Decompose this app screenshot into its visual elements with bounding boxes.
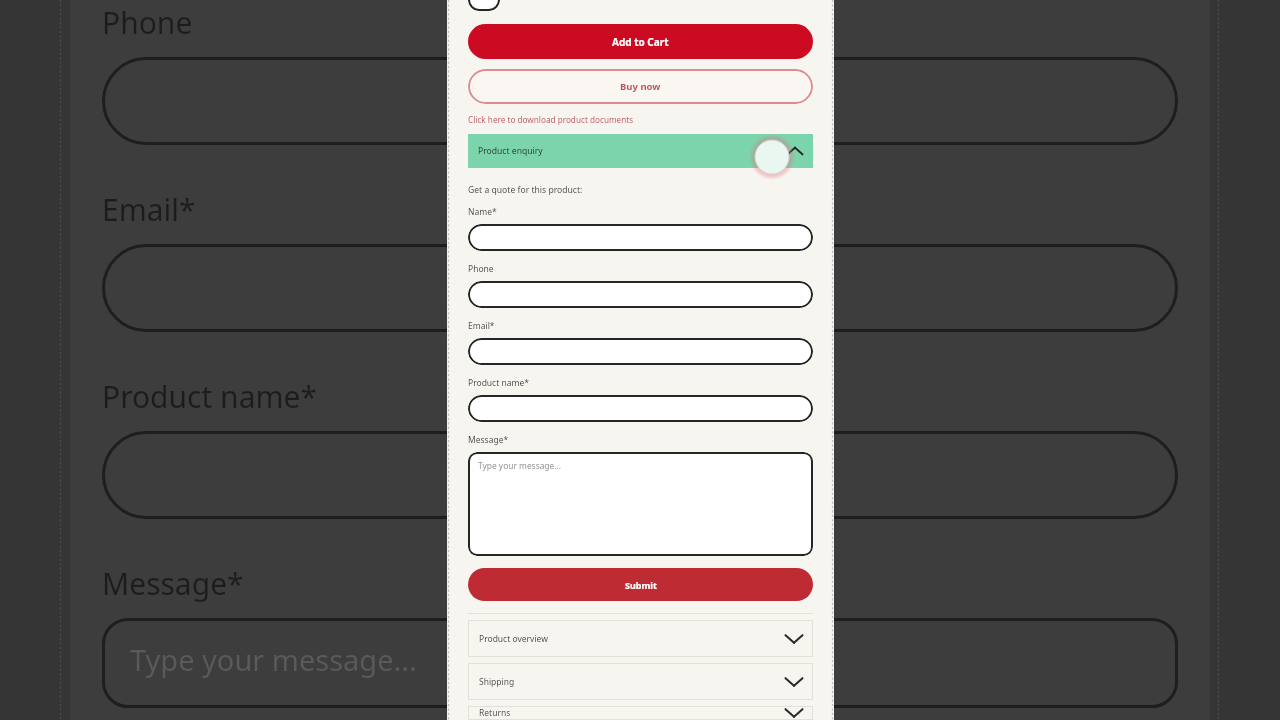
- staticText: Message*: [102, 563, 244, 604]
- button[interactable]: Buy now: [468, 69, 813, 104]
- button[interactable]: Product enquiry: [468, 134, 813, 168]
- button[interactable]: Add to Cart: [468, 24, 813, 59]
- staticText: Phone: [468, 263, 494, 275]
- staticText: Submit: [625, 579, 657, 591]
- staticText: Shipping: [479, 676, 515, 688]
- staticText: Type your message...: [130, 640, 417, 679]
- other: Collapse Product enquiry: [787, 143, 803, 159]
- button[interactable]: Shipping: [468, 663, 813, 700]
- button[interactable]: Returns: [468, 706, 813, 720]
- button[interactable]: [468, 281, 813, 308]
- button[interactable]: Product overview: [468, 620, 813, 657]
- staticText: Product enquiry: [478, 145, 543, 157]
- button[interactable]: Click here to download product documents: [468, 113, 634, 126]
- button[interactable]: [468, 338, 813, 365]
- staticText: Click here to download product documents: [468, 114, 634, 125]
- staticText: Returns: [479, 707, 511, 719]
- staticText: Email*: [102, 189, 196, 230]
- staticText: Email*: [468, 320, 495, 332]
- button[interactable]: [468, 224, 813, 251]
- staticText: Message*: [468, 434, 509, 446]
- staticText: Product name*: [468, 377, 529, 389]
- staticText: Buy now: [620, 80, 661, 93]
- button[interactable]: Type your message...: [468, 452, 813, 556]
- staticText: Add to Cart: [612, 35, 669, 49]
- staticText: Name*: [468, 206, 497, 218]
- staticText: Product overview: [479, 633, 548, 645]
- staticText: Get a quote for this product:: [468, 184, 583, 196]
- staticText: Phone: [102, 2, 193, 43]
- staticText: Product name*: [102, 376, 317, 417]
- button[interactable]: [468, 395, 813, 422]
- button[interactable]: [468, 0, 500, 11]
- button[interactable]: Submit: [468, 568, 813, 601]
- staticText: Type your message...: [478, 460, 562, 471]
